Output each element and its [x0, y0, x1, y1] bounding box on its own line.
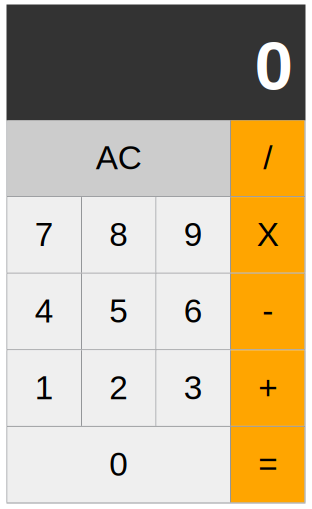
button[interactable]: 6	[156, 274, 230, 349]
button[interactable]: Add	[231, 350, 304, 426]
button[interactable]: Divide	[231, 120, 304, 196]
button[interactable]: 8	[82, 197, 155, 273]
staticText: 0	[109, 446, 128, 483]
staticText: 4	[35, 292, 54, 330]
button[interactable]: 9	[156, 197, 230, 273]
staticText: 7	[35, 216, 54, 253]
button[interactable]: Subtract	[231, 274, 304, 349]
button[interactable]: 7	[7, 197, 81, 273]
button[interactable]: Multiply	[231, 197, 304, 273]
button[interactable]: Equals	[231, 427, 304, 502]
button[interactable]: 0	[7, 427, 230, 502]
button[interactable]: All clear	[7, 120, 230, 196]
staticText: AC	[96, 139, 142, 176]
staticText: 8	[109, 216, 128, 253]
staticText: 9	[184, 216, 203, 253]
button[interactable]: 2	[82, 350, 155, 426]
staticText: +	[258, 369, 277, 406]
staticText: X	[257, 216, 279, 253]
button[interactable]: 5	[82, 274, 155, 349]
staticText: 5	[109, 292, 128, 330]
staticText: =	[258, 446, 277, 483]
staticText: 3	[184, 369, 203, 406]
button[interactable]: 4	[7, 274, 81, 349]
staticText: 6	[184, 292, 203, 330]
staticText: -	[262, 292, 273, 330]
button[interactable]: 1	[7, 350, 81, 426]
button[interactable]: 3	[156, 350, 230, 426]
staticText: 0	[254, 27, 293, 104]
staticText: 2	[109, 369, 128, 406]
staticText: 1	[35, 369, 54, 406]
staticText: /	[263, 139, 272, 176]
